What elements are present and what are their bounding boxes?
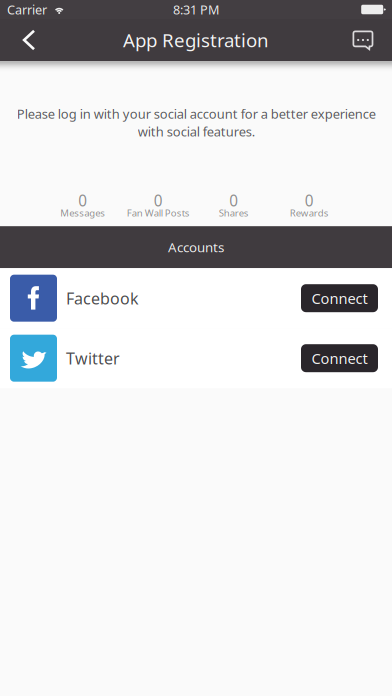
staticText: Connect: [311, 348, 367, 368]
button[interactable]: Facebook: [0, 268, 392, 328]
staticText: Messages: [60, 206, 105, 219]
staticText: Connect: [311, 288, 367, 308]
button[interactable]: Connect: [301, 284, 378, 312]
staticText: Carrier: [7, 1, 47, 18]
button[interactable]: Back: [0, 19, 58, 61]
button[interactable]: Twitter: [0, 328, 392, 388]
staticText: Facebook: [66, 287, 139, 309]
staticText: 0: [229, 190, 238, 211]
staticText: 0: [305, 190, 314, 211]
staticText: App Registration: [123, 27, 269, 53]
staticText: 0: [78, 190, 87, 211]
staticText: 0: [154, 190, 163, 211]
staticText: 8:31 PM: [173, 1, 219, 18]
staticText: Accounts: [168, 238, 224, 256]
staticText: Shares: [219, 206, 249, 219]
button[interactable]: Connect: [301, 344, 378, 372]
staticText: Twitter: [66, 347, 120, 369]
staticText: Rewards: [290, 206, 329, 219]
staticText: Fan Wall Posts: [127, 206, 190, 219]
staticText: Please log in with your social account f…: [16, 105, 375, 140]
button[interactable]: More: [334, 19, 392, 61]
